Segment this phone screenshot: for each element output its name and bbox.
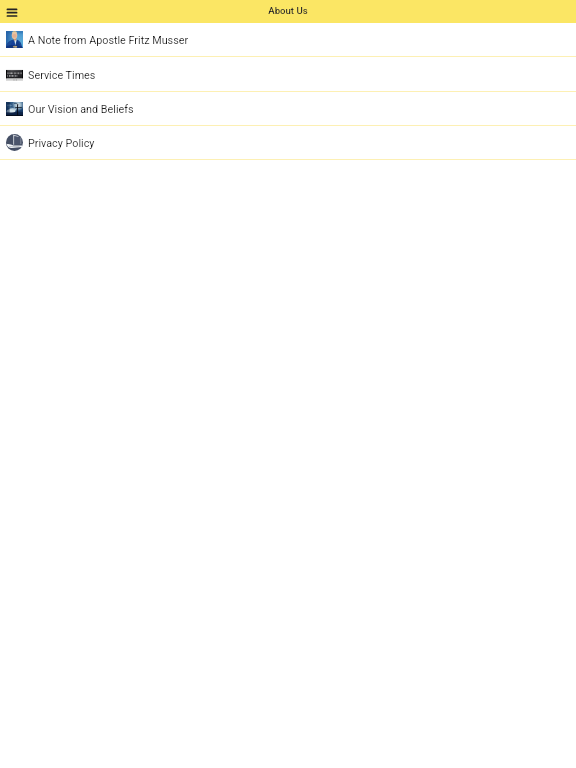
staticText: About Us bbox=[268, 5, 308, 16]
button[interactable]: Our Vision and Beliefs bbox=[0, 92, 576, 126]
staticText: A Note from Apostle Fritz Musser bbox=[28, 34, 189, 47]
staticText: Our Vision and Beliefs bbox=[28, 103, 134, 116]
button[interactable]: Privacy Policy bbox=[0, 126, 576, 160]
staticText: Privacy Policy bbox=[28, 137, 95, 150]
button[interactable]: A Note from Apostle Fritz Musser bbox=[0, 23, 576, 57]
button[interactable]: Service Times bbox=[0, 57, 576, 92]
staticText: Service Times bbox=[28, 69, 96, 82]
button[interactable]: Open navigation menu bbox=[0, 1, 22, 23]
